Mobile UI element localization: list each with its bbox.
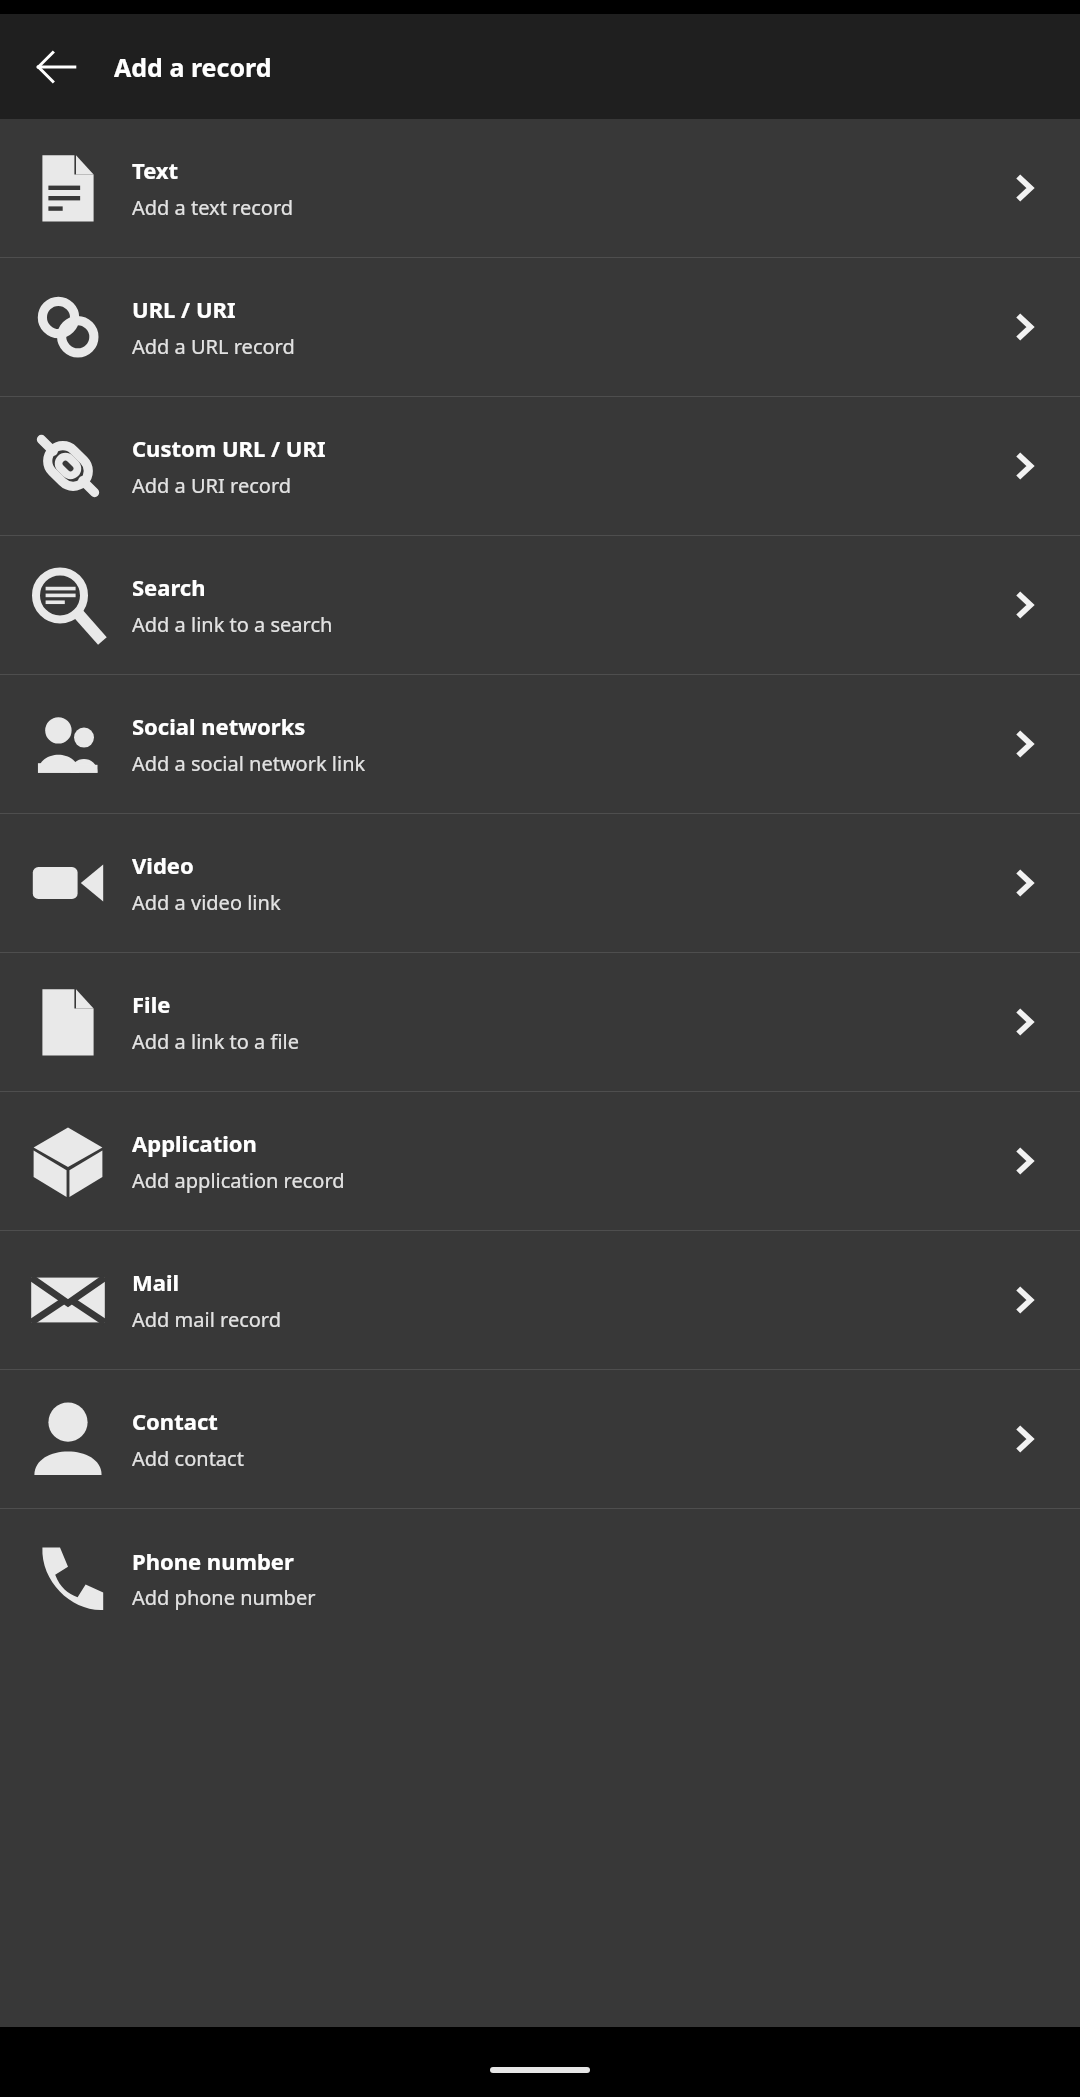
staticText: Custom URL / URI xyxy=(132,433,326,463)
staticText: Add application record xyxy=(132,1167,345,1194)
staticText: Add a link to a file xyxy=(132,1028,299,1055)
staticText: Add a social network link xyxy=(132,750,366,777)
staticText: Add a URL record xyxy=(132,333,295,360)
button[interactable]: Application xyxy=(0,1092,1080,1230)
button[interactable]: URL / URI xyxy=(0,258,1080,396)
staticText: Mail xyxy=(132,1267,180,1297)
staticText: Add a link to a search xyxy=(132,611,333,638)
button[interactable]: Social networks xyxy=(0,675,1080,813)
button[interactable]: Video xyxy=(0,814,1080,952)
button[interactable]: Text xyxy=(0,119,1080,257)
button[interactable]: Back xyxy=(18,29,94,105)
staticText: File xyxy=(132,989,171,1019)
staticText: Application xyxy=(132,1128,257,1158)
staticText: Social networks xyxy=(132,711,306,741)
staticText: Phone number xyxy=(132,1546,294,1576)
button[interactable]: Mail xyxy=(0,1231,1080,1369)
staticText: URL / URI xyxy=(132,294,236,324)
staticText: Contact xyxy=(132,1406,218,1436)
staticText: Add a text record xyxy=(132,194,294,221)
button[interactable]: File xyxy=(0,953,1080,1091)
button[interactable]: Search xyxy=(0,536,1080,674)
staticText: Add a record xyxy=(114,50,272,84)
staticText: Text xyxy=(132,155,179,185)
button[interactable]: Phone number xyxy=(0,1509,1080,1647)
staticText: Add phone number xyxy=(132,1584,316,1611)
button[interactable]: Contact xyxy=(0,1370,1080,1508)
button[interactable]: Custom URL / URI xyxy=(0,397,1080,535)
staticText: Add mail record xyxy=(132,1306,282,1333)
staticText: Search xyxy=(132,572,206,602)
staticText: Add a URI record xyxy=(132,472,292,499)
staticText: Video xyxy=(132,850,194,880)
staticText: Add a video link xyxy=(132,889,281,916)
staticText: Add contact xyxy=(132,1445,244,1472)
